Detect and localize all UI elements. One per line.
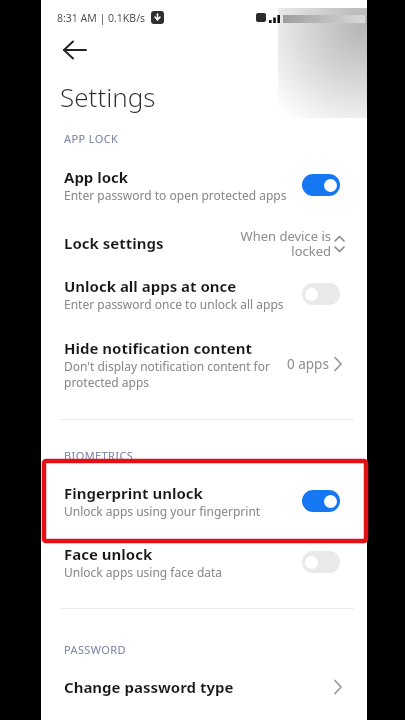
staticText: Enter password to open protected apps	[64, 187, 287, 203]
button[interactable]: App lock	[41, 162, 367, 208]
staticText: When device is locked	[240, 227, 331, 260]
staticText: Unlock apps using your fingerprint	[64, 503, 261, 519]
staticText: 8:31 AM | 0.1KB/s	[57, 11, 146, 25]
button[interactable]: Hide notification content	[41, 336, 367, 392]
button[interactable]	[302, 551, 340, 573]
staticText: Change password type	[64, 677, 234, 697]
staticText: Lock settings	[64, 233, 164, 253]
staticText: protected apps	[64, 374, 150, 390]
button[interactable]: Unlock all apps at once	[41, 271, 367, 317]
staticText: Face unlock	[64, 544, 153, 564]
staticText: PASSWORD	[64, 642, 126, 657]
button[interactable]	[302, 283, 340, 305]
staticText: Fingerprint unlock	[64, 483, 203, 503]
button[interactable]	[56, 34, 94, 66]
button[interactable]: Change password type	[41, 664, 367, 710]
button[interactable]	[302, 490, 340, 512]
button[interactable]	[302, 174, 340, 196]
staticText: App lock	[64, 167, 129, 187]
staticText: Unlock all apps at once	[64, 276, 237, 296]
button[interactable]: Face unlock	[41, 539, 367, 585]
staticText: APP LOCK	[64, 131, 119, 146]
staticText: Enter password once to unlock all apps	[64, 296, 284, 312]
button[interactable]: Fingerprint unlock	[41, 478, 367, 524]
button[interactable]: Lock settings	[41, 222, 367, 264]
staticText: Hide notification content	[64, 338, 253, 358]
staticText: Settings	[60, 79, 156, 114]
staticText: Don't display notification content for	[64, 358, 270, 374]
staticText: Unlock apps using face data	[64, 564, 223, 580]
staticText: 0 apps	[287, 355, 329, 373]
staticText: BIOMETRICS	[64, 448, 134, 463]
